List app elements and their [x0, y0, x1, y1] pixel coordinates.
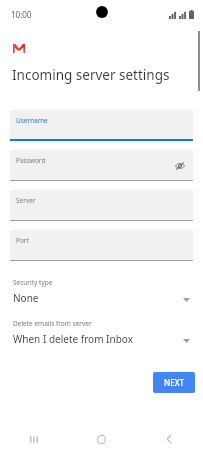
button[interactable]: Back — [159, 429, 179, 449]
button[interactable]: Security type — [0, 278, 203, 305]
staticText: Server — [16, 196, 36, 205]
staticText: When I delete from Inbox — [13, 332, 133, 346]
staticText: None — [13, 291, 39, 305]
button[interactable]: Home — [91, 429, 111, 449]
button[interactable]: Delete emails from server — [0, 319, 203, 346]
staticText: NEXT — [164, 377, 185, 388]
button[interactable]: Recent apps — [24, 429, 44, 449]
staticText: Security type — [13, 278, 53, 287]
button[interactable]: Port — [10, 230, 193, 261]
staticText: Port — [16, 236, 29, 245]
button[interactable]: NEXT — [153, 372, 195, 393]
button[interactable]: Password — [10, 150, 193, 181]
button[interactable]: Username — [10, 110, 193, 141]
staticText: Delete emails from server — [13, 319, 92, 328]
staticText: 10:00 — [11, 9, 32, 20]
staticText: Incoming server settings — [12, 66, 170, 84]
button[interactable]: Server — [10, 190, 193, 221]
staticText: Username — [16, 116, 48, 125]
staticText: Password — [16, 156, 46, 165]
button[interactable]: Show password — [173, 159, 187, 173]
